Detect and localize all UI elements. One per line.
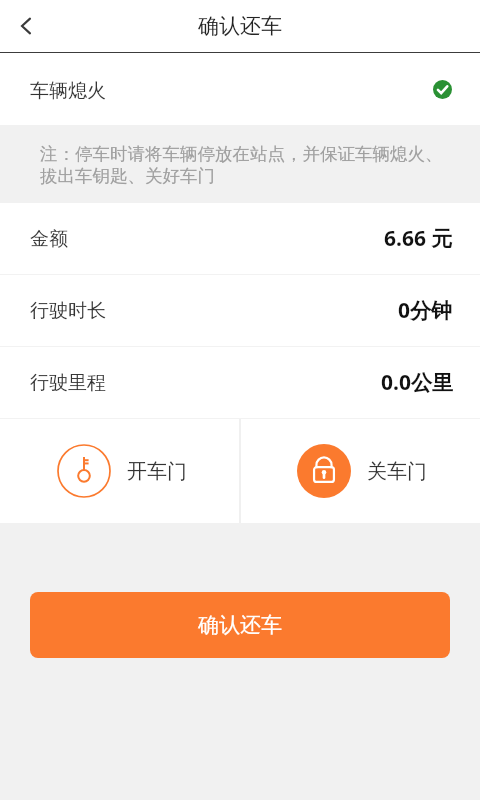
staticText: 行驶时长 <box>30 299 106 323</box>
staticText: 金额 <box>30 227 68 251</box>
staticText: 6.66 元 <box>384 224 453 253</box>
staticText: 行驶里程 <box>30 371 106 395</box>
staticText: 关车门 <box>367 459 427 484</box>
staticText: 注：停车时请将车辆停放在站点，并保证车辆熄火、 <box>40 143 443 165</box>
staticText: 拔出车钥匙、关好车门 <box>40 165 215 187</box>
button[interactable]: Back <box>0 0 52 52</box>
staticText: 确认还车 <box>198 612 282 638</box>
staticText: 0分钟 <box>398 296 453 325</box>
staticText: 开车门 <box>127 459 187 484</box>
button[interactable]: 确认还车 <box>30 592 450 658</box>
button[interactable]: 开车门 <box>0 419 239 523</box>
staticText: 车辆熄火 <box>30 79 106 103</box>
staticText: 确认还车 <box>198 13 282 39</box>
staticText: 0.0公里 <box>381 368 453 397</box>
button[interactable]: 关车门 <box>241 419 480 523</box>
